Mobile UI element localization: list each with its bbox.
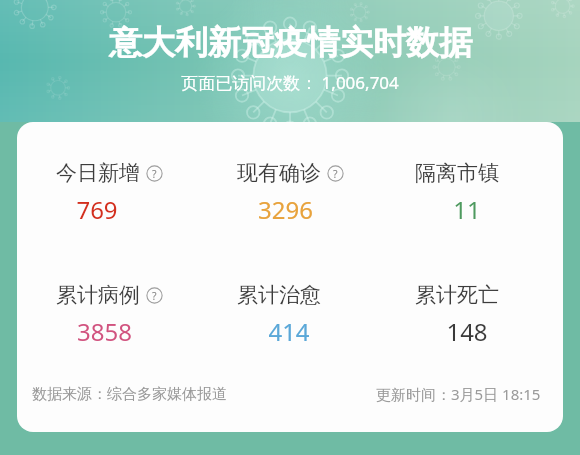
staticText: 现有确诊 <box>237 160 321 186</box>
staticText: ? <box>152 289 157 303</box>
button[interactable]: 累计治愈 <box>237 282 341 348</box>
staticText: 数据来源：综合多家媒体报道 <box>32 385 227 404</box>
button[interactable]: 说明 <box>146 165 163 182</box>
button[interactable]: 说明 <box>146 287 163 304</box>
button[interactable]: 今日新增 <box>56 160 163 226</box>
staticText: 累计治愈 <box>237 282 321 308</box>
staticText: 11 <box>453 193 481 226</box>
staticText: 累计病例 <box>56 282 140 308</box>
button[interactable]: 说明 <box>327 165 344 182</box>
button[interactable]: 累计病例 <box>56 282 163 348</box>
staticText: 意大利新冠疫情实时数据 <box>109 22 472 64</box>
staticText: 累计死亡 <box>415 282 499 308</box>
staticText: 769 <box>76 193 118 226</box>
staticText: 隔离市镇 <box>415 160 499 186</box>
button[interactable]: 隔离市镇 <box>415 160 519 226</box>
staticText: 今日新增 <box>56 160 140 186</box>
staticText: 更新时间：3月5日 18:15 <box>376 384 541 404</box>
staticText: 页面已访问次数： 1,006,704 <box>181 71 399 94</box>
staticText: 148 <box>446 315 488 348</box>
staticText: 3858 <box>77 315 132 348</box>
button[interactable]: 现有确诊 <box>237 160 344 226</box>
staticText: ? <box>333 167 338 181</box>
button[interactable]: 累计死亡 <box>415 282 519 348</box>
staticText: ? <box>152 167 157 181</box>
staticText: 3296 <box>258 193 313 226</box>
staticText: 414 <box>268 315 310 348</box>
